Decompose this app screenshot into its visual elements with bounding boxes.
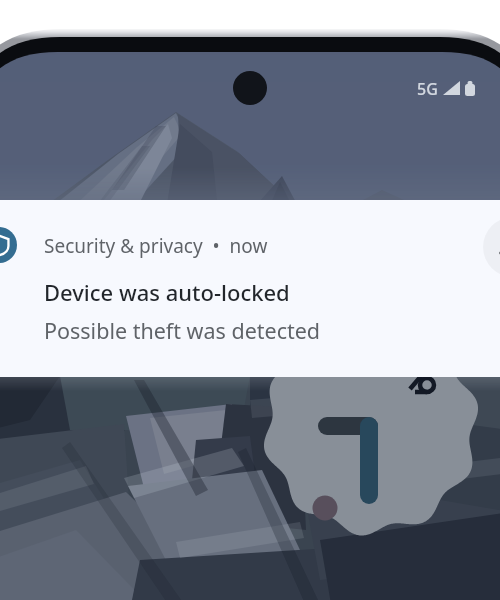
staticText: Possible theft was detected [44,316,321,345]
button[interactable]: Expand notification [483,217,500,277]
staticText: 5G [417,78,438,98]
staticText: Device was auto-locked [44,277,290,307]
button[interactable]: Security & privacy • now [0,200,500,377]
staticText: Security & privacy • now [44,233,268,259]
